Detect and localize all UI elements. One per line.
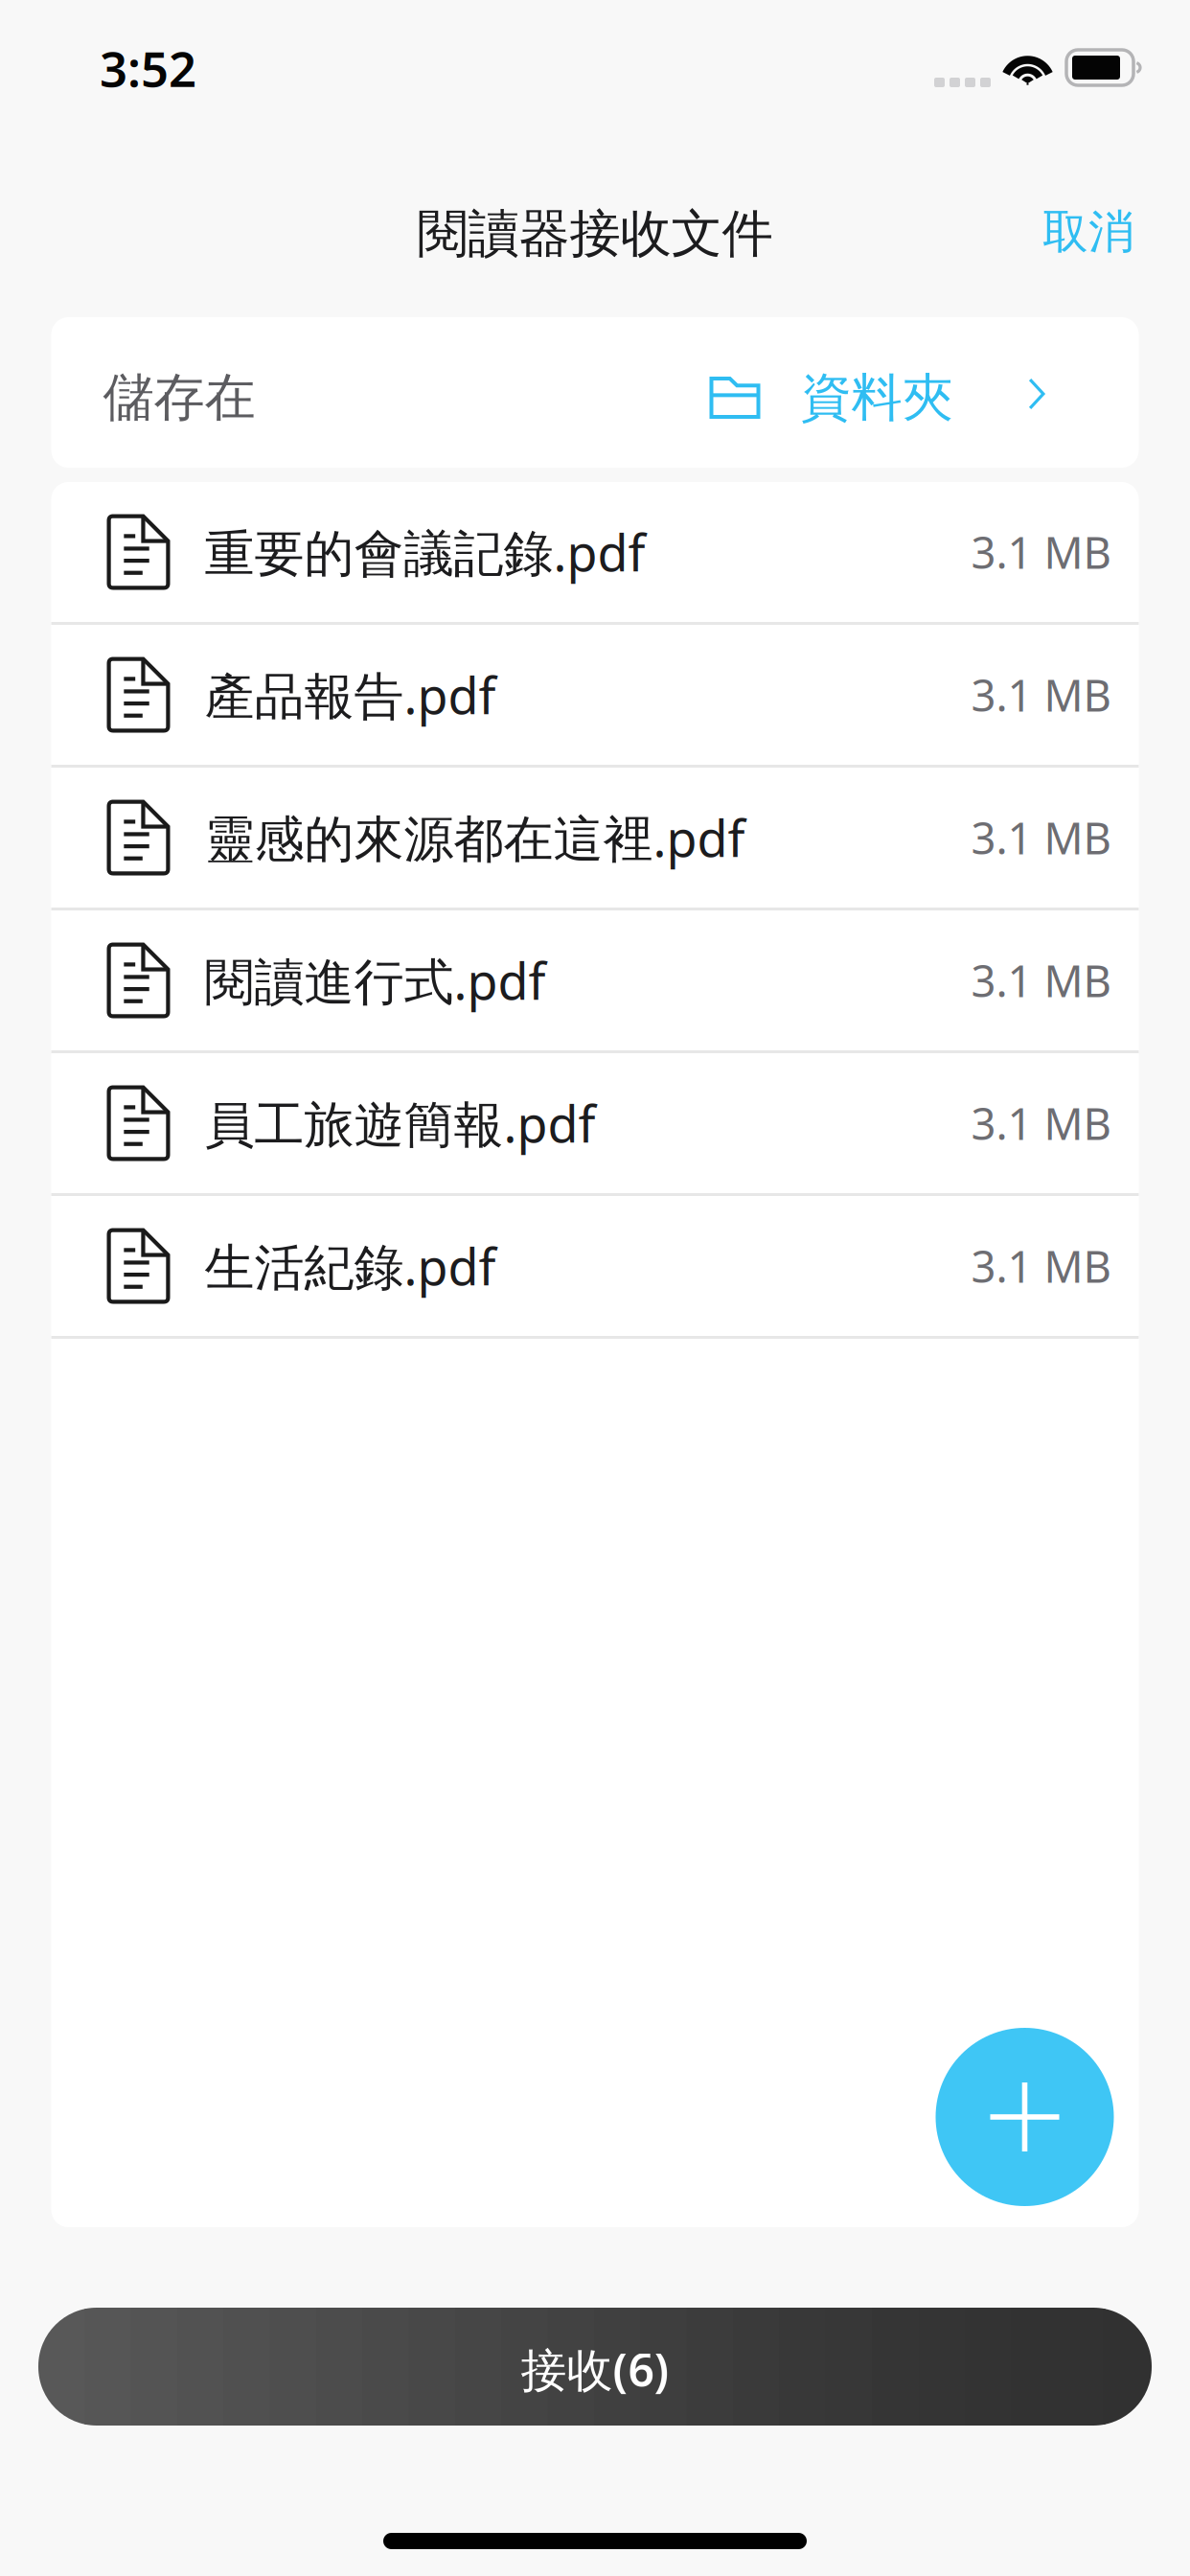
staticText: 閱讀器接收文件	[417, 202, 773, 265]
staticText: 產品報告.pdf	[205, 662, 496, 728]
staticText: 3.1 MB	[971, 666, 1111, 724]
button[interactable]: 產品報告.pdf	[51, 625, 1139, 765]
button[interactable]: 靈感的來源都在這裡.pdf	[51, 768, 1139, 908]
staticText: 3.1 MB	[971, 523, 1111, 581]
button[interactable]: 閱讀進行式.pdf	[51, 910, 1139, 1050]
staticText: 生活紀錄.pdf	[205, 1233, 496, 1299]
staticText: 員工旅遊簡報.pdf	[205, 1090, 595, 1156]
staticText: 閱讀進行式.pdf	[205, 947, 546, 1014]
button[interactable]: 儲存在	[51, 317, 1139, 468]
staticText: 儲存在	[103, 366, 255, 429]
staticText: 靈感的來源都在這裡.pdf	[205, 805, 745, 871]
staticText: 3.1 MB	[971, 952, 1111, 1009]
button[interactable]: 接收(6)	[38, 2308, 1152, 2426]
button[interactable]: 重要的會議記錄.pdf	[51, 482, 1139, 622]
staticText: 資料夾	[801, 366, 953, 429]
staticText: 重要的會議記錄.pdf	[205, 519, 645, 585]
button[interactable]: 取消	[1029, 186, 1148, 281]
staticText: 3.1 MB	[971, 809, 1111, 866]
staticText: 接收(6)	[521, 2338, 669, 2399]
button[interactable]: 生活紀錄.pdf	[51, 1196, 1139, 1336]
staticText: 3.1 MB	[971, 1237, 1111, 1295]
staticText: 取消	[1042, 204, 1134, 260]
button[interactable]: 員工旅遊簡報.pdf	[51, 1053, 1139, 1193]
button[interactable]: Add file	[936, 2028, 1114, 2206]
staticText: 3.1 MB	[971, 1094, 1111, 1152]
staticText: 3:52	[100, 36, 196, 100]
